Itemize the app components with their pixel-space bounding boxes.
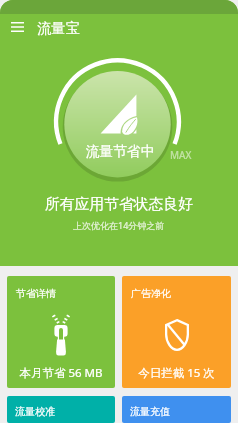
button[interactable]: 广告净化	[122, 276, 231, 388]
staticText: 广告净化	[131, 287, 171, 300]
staticText: MAX	[170, 148, 192, 162]
staticText: 流量校准	[15, 405, 56, 418]
button[interactable]: 流量充值	[122, 396, 231, 423]
button[interactable]: 流量校准	[7, 396, 115, 423]
staticText: 所有应用节省状态良好	[45, 195, 193, 214]
staticText: 上次优化在14分钟之前	[73, 219, 165, 231]
button[interactable]: 节省详情	[7, 276, 115, 388]
button[interactable]: Menu	[4, 15, 30, 39]
staticText: 本月节省 56 MB	[7, 365, 115, 381]
staticText: 今日拦截 15 次	[122, 365, 231, 381]
staticText: 流量节省中	[1, 143, 238, 160]
staticText: 节省详情	[16, 287, 56, 300]
staticText: 流量充值	[130, 405, 171, 418]
staticText: 流量宝	[37, 19, 80, 37]
